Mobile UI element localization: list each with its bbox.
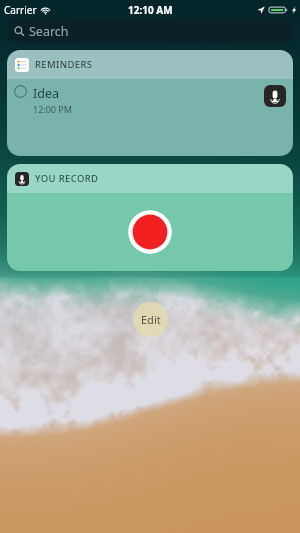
staticText: Search <box>29 23 69 40</box>
staticText: Edit <box>141 312 161 327</box>
staticText: Idea <box>33 85 59 102</box>
button[interactable]: Search <box>7 19 293 43</box>
staticText: REMINDERS <box>35 58 93 71</box>
button[interactable]: Idea <box>7 79 293 156</box>
button[interactable]: REMINDERS <box>7 50 293 79</box>
button[interactable]: Record voice memo <box>264 85 286 107</box>
staticText: YOU RECORD <box>35 172 99 185</box>
staticText: 12:10 AM <box>128 3 173 17</box>
button[interactable]: Edit <box>133 302 168 337</box>
button[interactable]: Record <box>128 210 172 254</box>
staticText: 12:00 PM <box>33 103 72 115</box>
button[interactable]: YOU RECORD <box>7 164 293 193</box>
staticText: Carrier <box>4 3 37 17</box>
